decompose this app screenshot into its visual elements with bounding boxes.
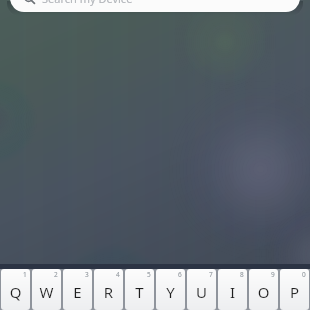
other: Search: [24, 0, 35, 4]
staticText: Q: [1, 282, 30, 302]
button[interactable]: 8: [218, 269, 247, 310]
button[interactable]: Search: [10, 0, 300, 12]
button[interactable]: 5: [125, 269, 154, 310]
staticText: Y: [156, 282, 185, 302]
button[interactable]: 4: [94, 269, 123, 310]
staticText: O: [249, 282, 278, 302]
staticText: 7: [209, 270, 213, 279]
staticText: 6: [178, 270, 182, 279]
staticText: W: [32, 282, 61, 302]
staticText: P: [280, 282, 309, 302]
staticText: R: [94, 282, 123, 302]
staticText: 3: [85, 270, 89, 279]
staticText: 9: [271, 270, 275, 279]
staticText: 1: [23, 270, 27, 279]
staticText: U: [187, 282, 216, 302]
staticText: I: [218, 282, 247, 302]
staticText: 4: [116, 270, 120, 279]
button[interactable]: 9: [249, 269, 278, 310]
staticText: T: [125, 282, 154, 302]
staticText: 2: [54, 270, 58, 279]
staticText: E: [63, 282, 92, 302]
staticText: 0: [302, 270, 306, 279]
staticText: Search my Device: [42, 0, 133, 6]
button[interactable]: 7: [187, 269, 216, 310]
staticText: 8: [240, 270, 244, 279]
button[interactable]: 6: [156, 269, 185, 310]
button[interactable]: 1: [1, 269, 30, 310]
button[interactable]: 0: [280, 269, 309, 310]
button[interactable]: 3: [63, 269, 92, 310]
staticText: 5: [147, 270, 151, 279]
button[interactable]: 2: [32, 269, 61, 310]
